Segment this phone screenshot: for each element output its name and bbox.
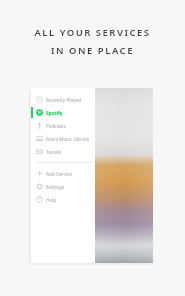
button[interactable]: Recently Played bbox=[31, 93, 95, 106]
button[interactable]: Ana's Music Library bbox=[31, 132, 95, 145]
staticText: Podcasts bbox=[46, 123, 66, 129]
staticText: TuneIn bbox=[46, 149, 62, 155]
button[interactable]: Podcasts bbox=[31, 119, 95, 132]
staticText: Recently Played bbox=[46, 97, 82, 103]
button[interactable]: Spotify bbox=[31, 106, 95, 119]
staticText: IN ONE PLACE bbox=[51, 44, 134, 57]
button[interactable]: Add Service bbox=[31, 167, 95, 180]
staticText: Settings bbox=[46, 184, 65, 190]
staticText: Ana's Music Library bbox=[46, 136, 90, 142]
button[interactable]: Settings bbox=[31, 180, 95, 193]
staticText: Spotify bbox=[46, 110, 63, 116]
staticText: Add Service bbox=[46, 171, 73, 177]
button[interactable]: TuneIn bbox=[31, 145, 95, 158]
staticText: ALL YOUR SERVICES bbox=[34, 26, 151, 39]
staticText: Help bbox=[46, 197, 57, 203]
button[interactable]: Help bbox=[31, 193, 95, 206]
